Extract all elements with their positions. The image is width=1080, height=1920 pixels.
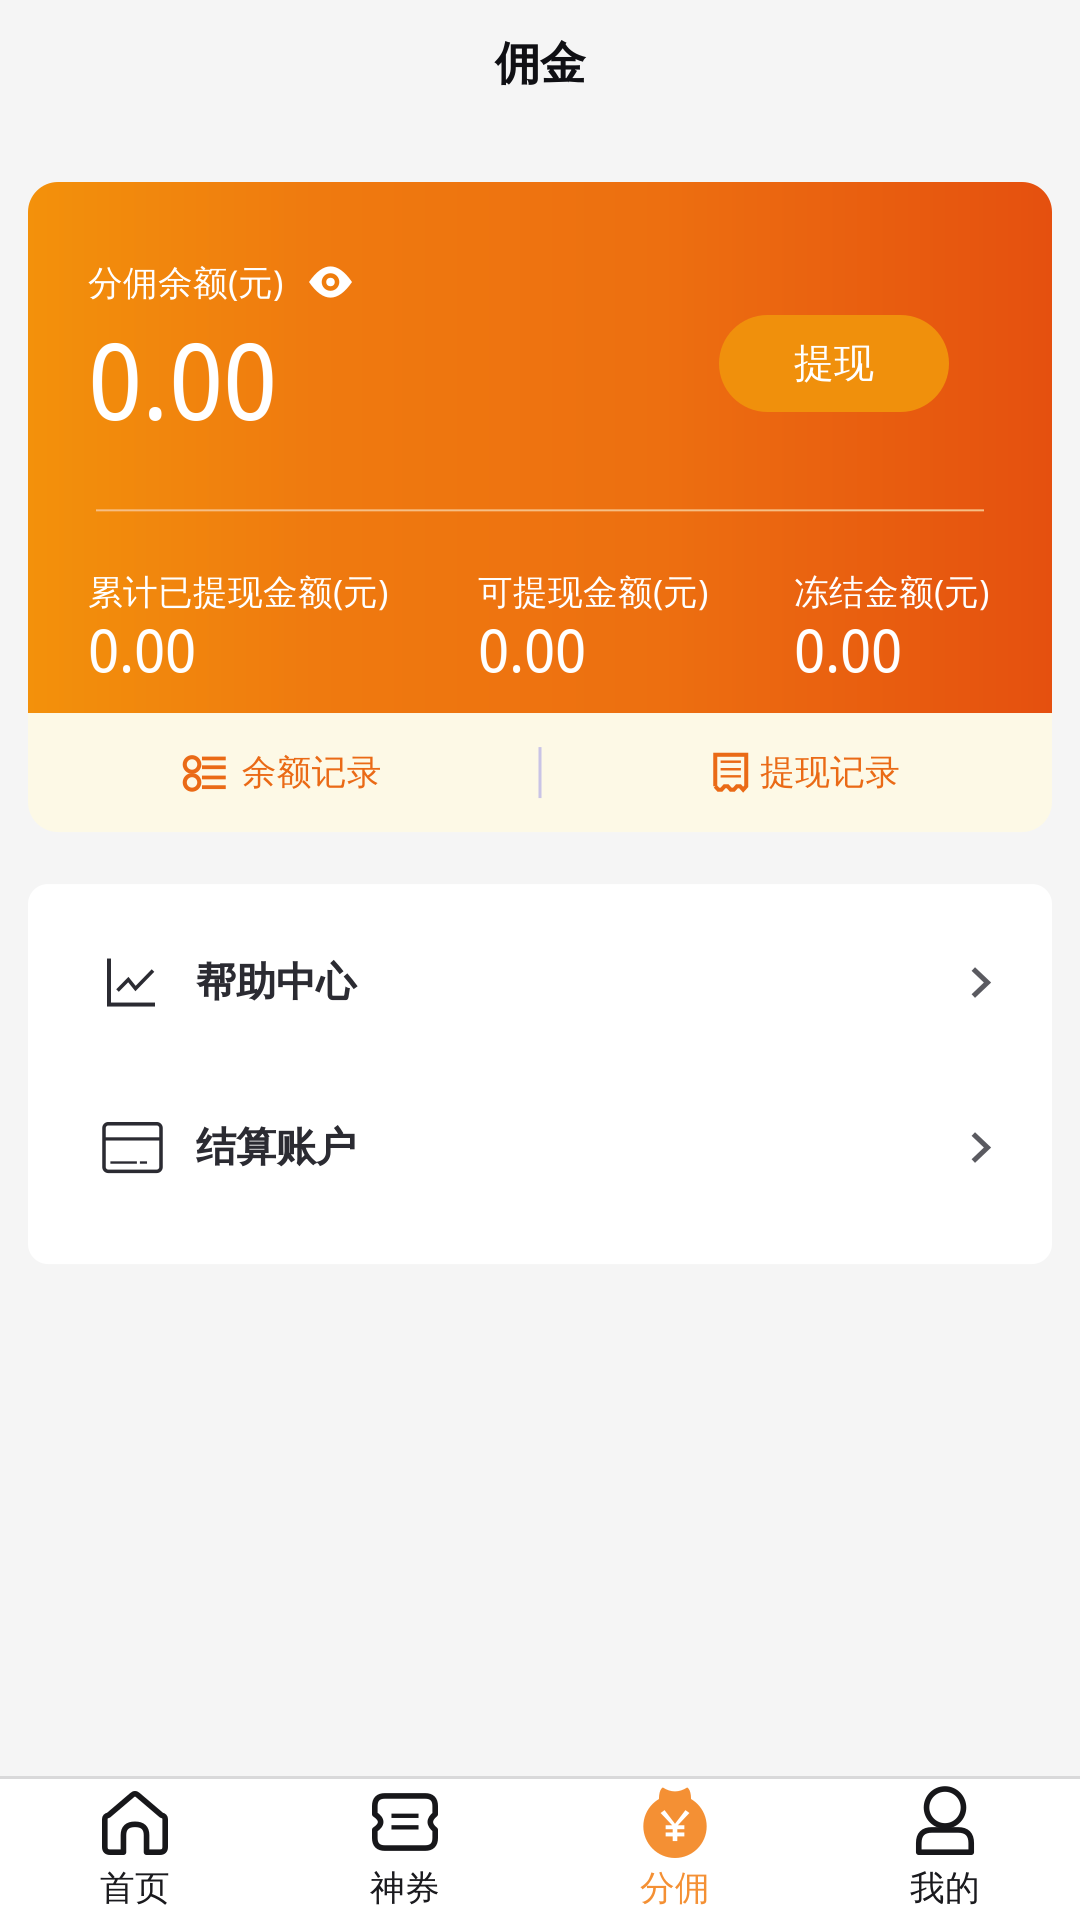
button[interactable]: 神券	[270, 1779, 540, 1920]
staticText: 佣金	[495, 36, 585, 92]
staticText: 可提现金额(元)	[478, 568, 708, 614]
staticText: 帮助中心	[196, 958, 356, 1007]
button[interactable]: 我的	[810, 1779, 1080, 1920]
staticText: 累计已提现金额(元)	[88, 568, 388, 614]
staticText: 神券	[370, 1867, 440, 1910]
button[interactable]: 帮助中心	[28, 900, 1052, 1065]
staticText: 冻结金额(元)	[794, 568, 989, 614]
staticText: 0.00	[478, 608, 586, 690]
staticText: 0.00	[794, 608, 902, 690]
staticText: 结算账户	[196, 1123, 356, 1172]
staticText: 提现	[794, 339, 874, 388]
button[interactable]: 首页	[0, 1779, 270, 1920]
button[interactable]: 提现记录	[541, 713, 1052, 832]
button[interactable]: 分佣	[540, 1779, 810, 1920]
button[interactable]: 结算账户	[28, 1065, 1052, 1230]
staticText: 提现记录	[760, 751, 900, 794]
staticText: 分佣余额(元)	[88, 259, 283, 305]
button[interactable]: 余额记录	[28, 713, 538, 832]
staticText: 我的	[910, 1867, 980, 1910]
staticText: 首页	[100, 1867, 170, 1910]
staticText: 0.00	[88, 306, 277, 451]
staticText: 分佣	[640, 1867, 710, 1910]
staticText: 余额记录	[242, 751, 382, 794]
staticText: 0.00	[88, 608, 196, 690]
button[interactable]: 提现	[719, 259, 949, 412]
